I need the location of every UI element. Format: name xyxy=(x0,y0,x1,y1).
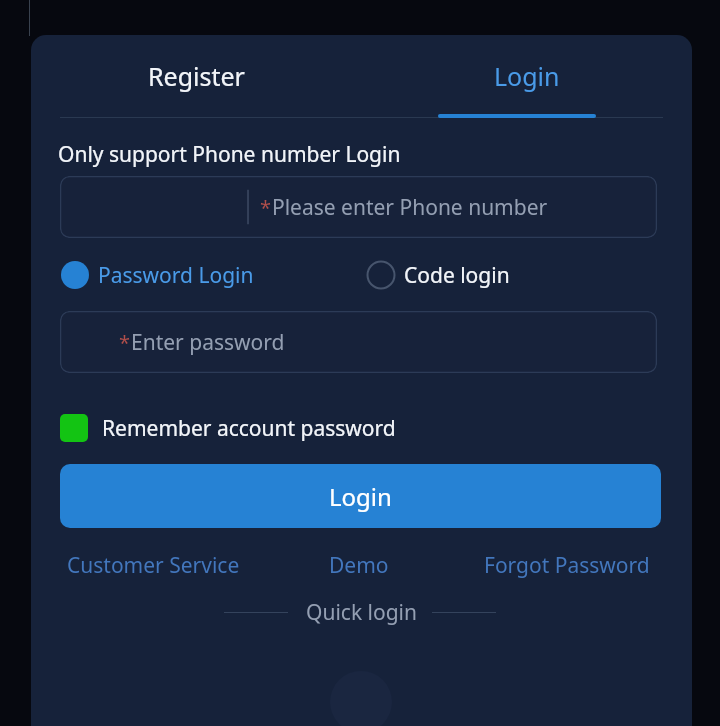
staticText: Register xyxy=(148,59,245,93)
button[interactable]: Demo xyxy=(329,546,389,584)
staticText: Forgot Password xyxy=(484,551,650,580)
button[interactable]: Remember account password xyxy=(60,410,396,446)
button[interactable]: Login xyxy=(361,35,692,117)
button[interactable]: Login xyxy=(60,464,661,528)
button[interactable]: Register xyxy=(31,35,361,117)
button[interactable]: * xyxy=(60,311,657,373)
staticText: * xyxy=(119,329,131,356)
staticText: Only support Phone number Login xyxy=(58,140,401,169)
staticText: Enter password xyxy=(131,328,285,357)
staticText: Code login xyxy=(404,261,510,290)
button[interactable]: Customer Service xyxy=(67,546,240,584)
staticText: Password Login xyxy=(98,261,254,290)
staticText: Login xyxy=(329,480,392,513)
staticText: Customer Service xyxy=(67,551,240,580)
staticText: Demo xyxy=(329,551,389,580)
staticText: Login xyxy=(494,59,560,93)
staticText: Please enter Phone number xyxy=(272,193,548,222)
button[interactable]: * xyxy=(60,176,657,238)
staticText: Quick login xyxy=(306,598,417,627)
button[interactable]: Code login xyxy=(366,257,510,293)
button[interactable]: Password Login xyxy=(60,257,254,293)
button[interactable]: Forgot Password xyxy=(484,546,650,584)
staticText: * xyxy=(260,194,272,221)
staticText: Remember account password xyxy=(102,414,396,443)
